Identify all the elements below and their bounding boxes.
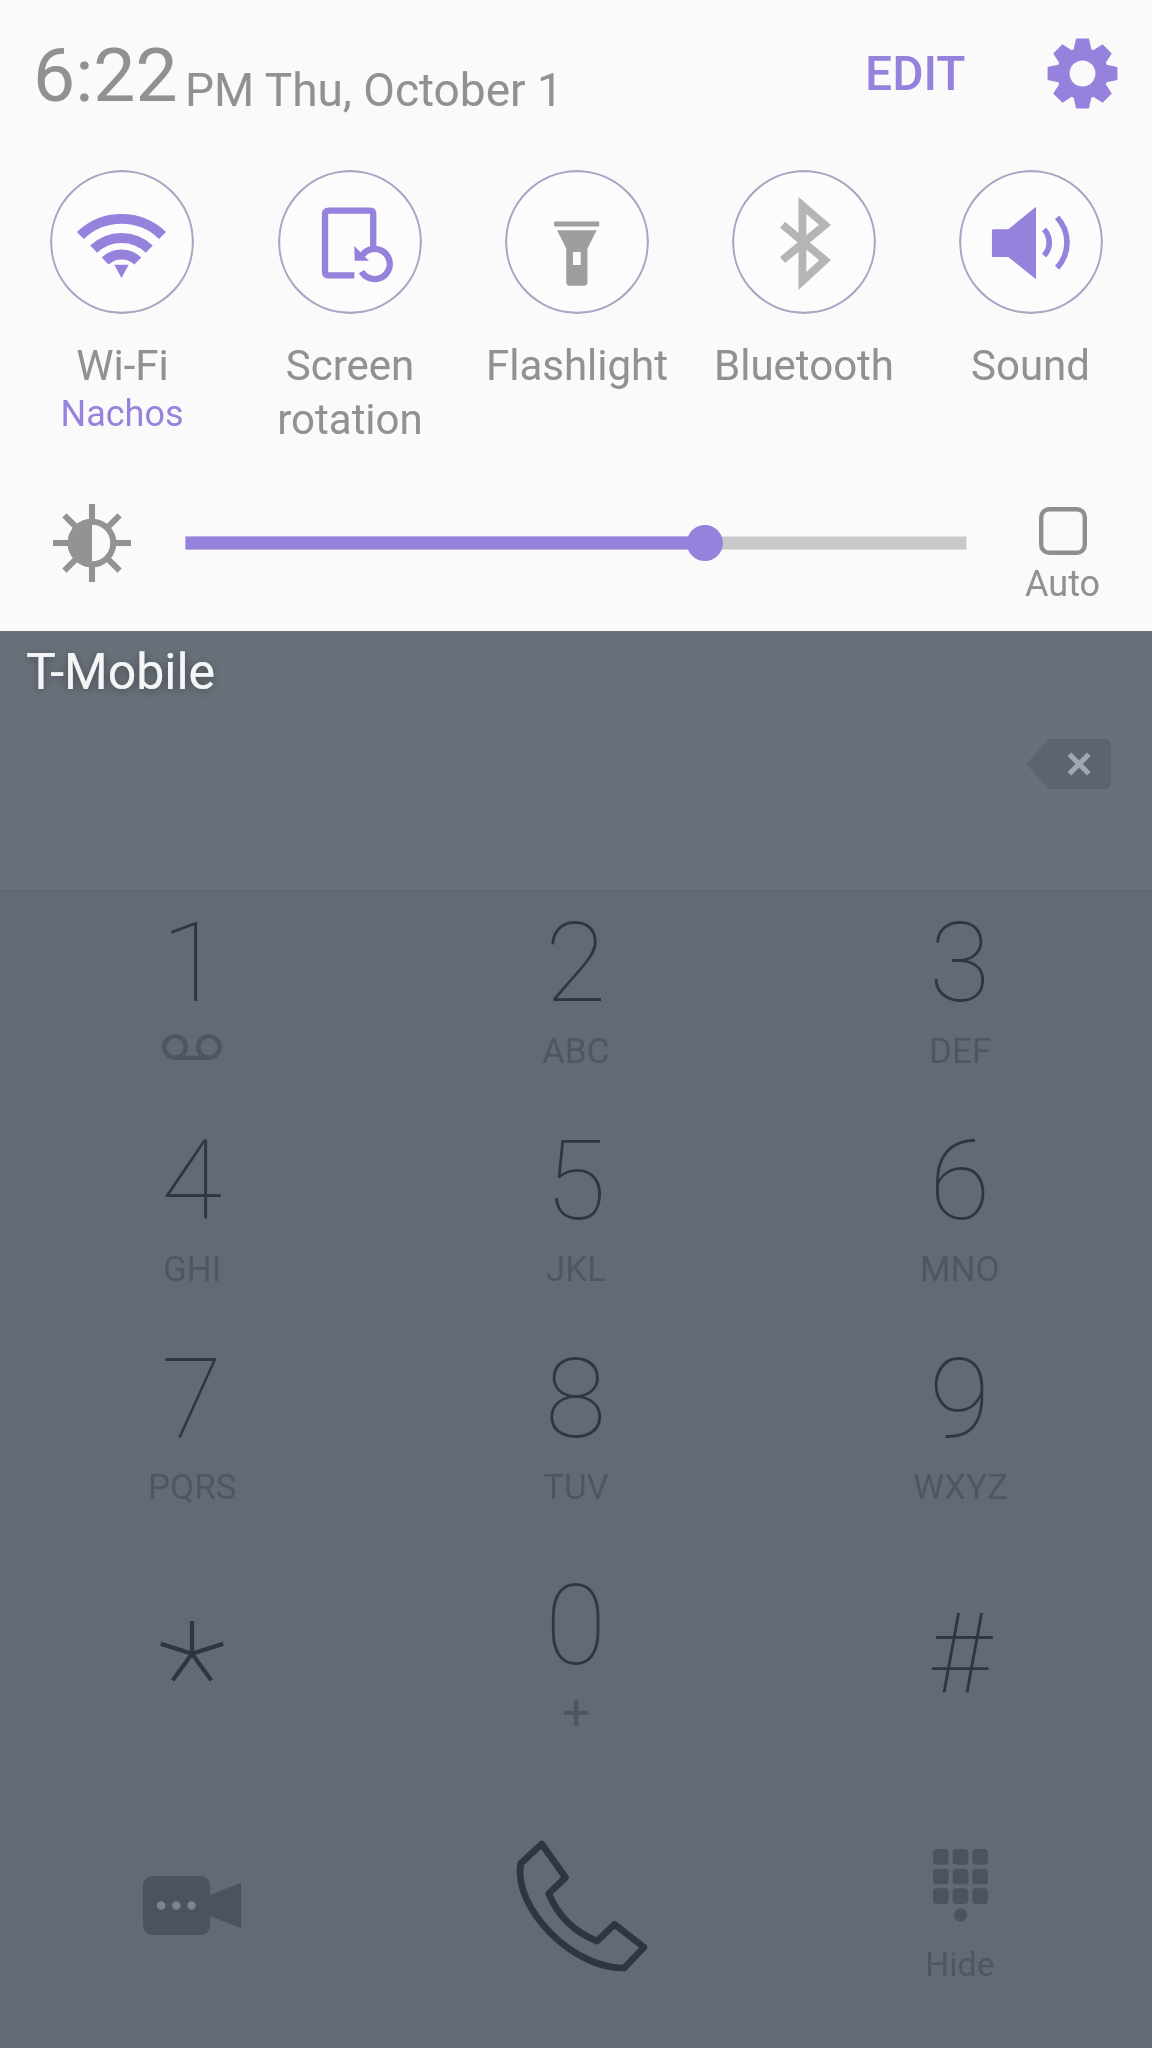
staticText: PQRS bbox=[148, 1467, 237, 1508]
staticText: Hide bbox=[925, 1944, 995, 1984]
staticText: 6 bbox=[929, 1115, 991, 1246]
button[interactable]: Screen rotation bbox=[236, 170, 463, 444]
button[interactable]: Brightness bbox=[49, 500, 135, 586]
staticText: 5 bbox=[545, 1115, 607, 1246]
button[interactable]: 7 bbox=[0, 1333, 384, 1551]
button[interactable]: Settings bbox=[1034, 25, 1130, 121]
staticText: DEF bbox=[929, 1031, 992, 1072]
button[interactable]: 9 bbox=[768, 1333, 1152, 1551]
button[interactable]: Bluetooth bbox=[690, 170, 917, 390]
staticText: 3 bbox=[929, 897, 991, 1028]
staticText: EDIT bbox=[865, 45, 966, 101]
staticText: Bluetooth bbox=[714, 341, 894, 390]
staticText: TUV bbox=[543, 1467, 609, 1508]
staticText: 1 bbox=[161, 897, 223, 1028]
button[interactable]: # bbox=[768, 1551, 1152, 1790]
staticText: T-Mobile bbox=[26, 643, 216, 702]
staticText: PM Thu, October 1 bbox=[185, 63, 563, 117]
staticText: Sound bbox=[971, 341, 1090, 390]
staticText: 8 bbox=[545, 1333, 607, 1464]
button[interactable]: 8 bbox=[384, 1333, 768, 1551]
staticText: Auto bbox=[1025, 563, 1101, 605]
button[interactable]: Call bbox=[384, 1790, 768, 2048]
staticText: 6:22 bbox=[33, 31, 178, 119]
staticText: JKL bbox=[546, 1249, 607, 1290]
staticText: Nachos bbox=[60, 393, 184, 435]
staticText: 4 bbox=[161, 1115, 223, 1246]
button[interactable] bbox=[0, 1551, 384, 1790]
button[interactable]: 5 bbox=[384, 1115, 768, 1333]
staticText: MNO bbox=[920, 1249, 1000, 1290]
button[interactable]: Video call bbox=[0, 1790, 384, 2048]
staticText: 7 bbox=[161, 1333, 223, 1464]
staticText: ABC bbox=[542, 1031, 610, 1072]
button[interactable]: 2 bbox=[384, 897, 768, 1115]
staticText: 9 bbox=[929, 1333, 991, 1464]
button[interactable]: 6 bbox=[768, 1115, 1152, 1333]
button[interactable]: Hide bbox=[768, 1790, 1152, 2048]
button[interactable]: Backspace bbox=[1010, 728, 1126, 800]
staticText: # bbox=[929, 1588, 991, 1719]
button[interactable]: Flashlight bbox=[463, 170, 690, 390]
staticText: Wi-Fi bbox=[76, 341, 169, 390]
button[interactable]: 4 bbox=[0, 1115, 384, 1333]
staticText: 0 bbox=[545, 1560, 607, 1691]
staticText: Screen rotation bbox=[277, 341, 423, 444]
staticText: WXYZ bbox=[913, 1467, 1008, 1508]
staticText: + bbox=[562, 1684, 591, 1743]
button[interactable]: Wi-Fi bbox=[8, 170, 236, 435]
button[interactable]: Auto bbox=[1003, 487, 1123, 605]
staticText: Flashlight bbox=[486, 341, 668, 390]
button[interactable]: 0 bbox=[384, 1551, 768, 1790]
staticText: GHI bbox=[163, 1249, 222, 1290]
button[interactable]: EDIT bbox=[840, 24, 990, 122]
staticText: 2 bbox=[545, 897, 607, 1028]
button[interactable]: 1 bbox=[0, 897, 384, 1115]
button[interactable]: 3 bbox=[768, 897, 1152, 1115]
button[interactable]: Sound bbox=[917, 170, 1144, 390]
